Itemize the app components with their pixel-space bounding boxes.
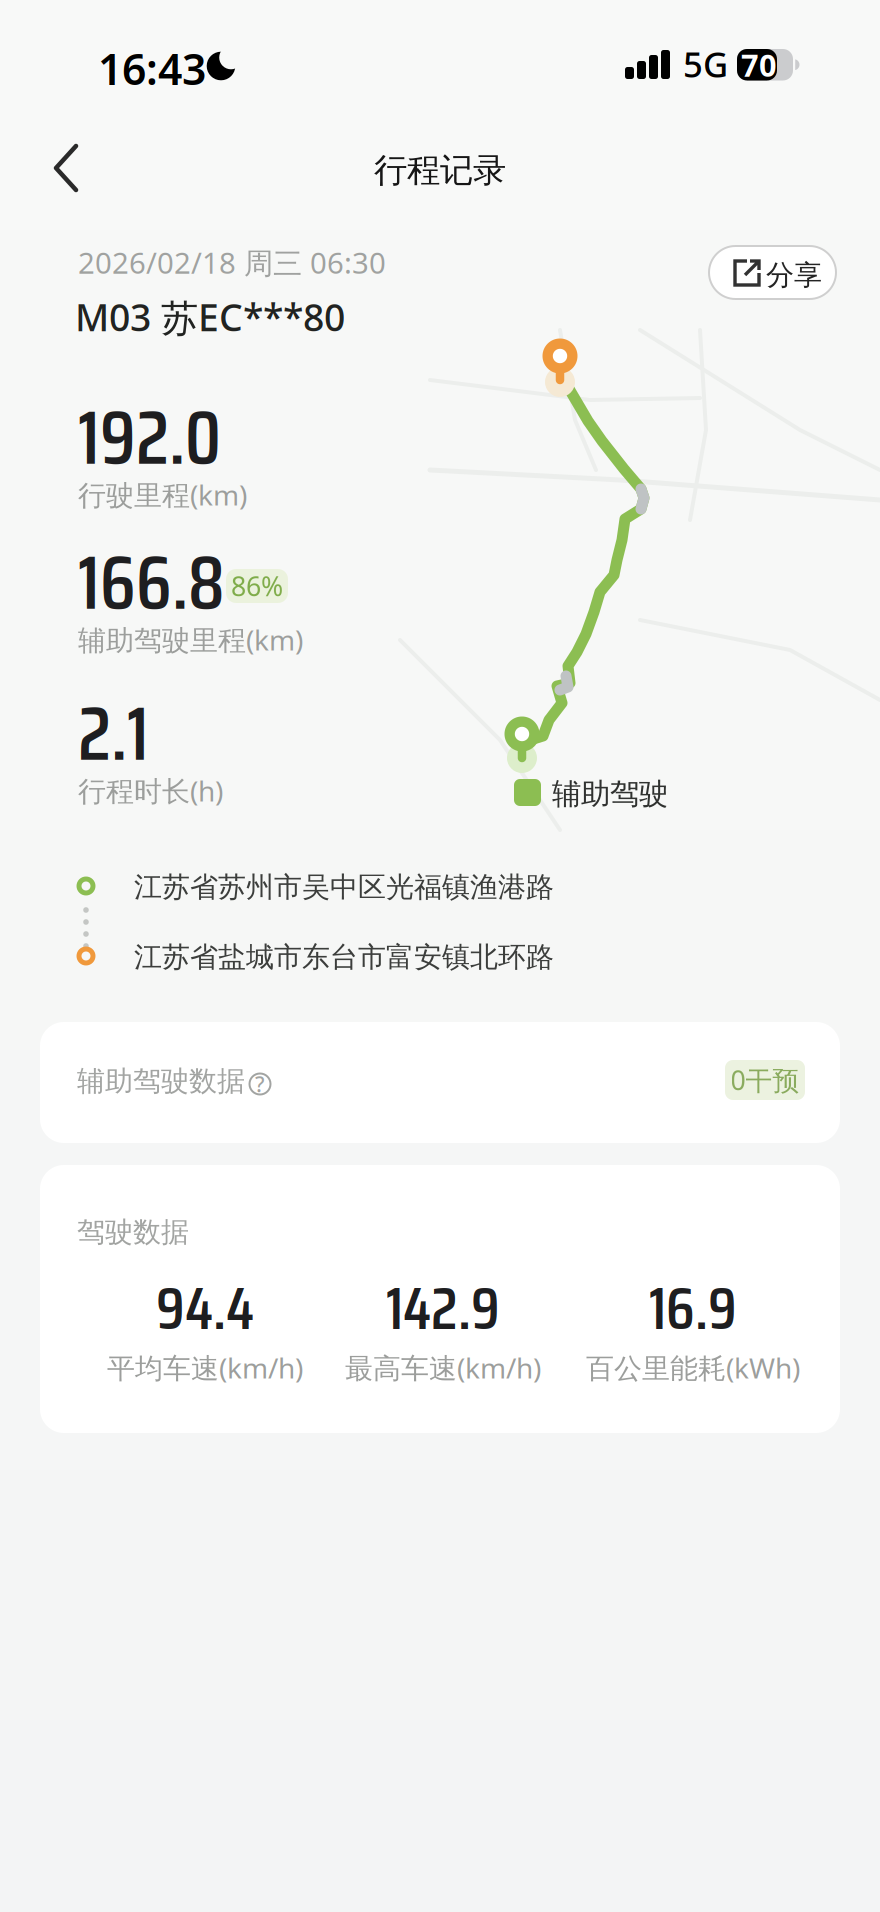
staticText: 86% (231, 568, 283, 604)
staticText: 分享 (766, 258, 822, 292)
staticText: 94.4 (156, 1261, 254, 1355)
staticText: 百公里能耗(kWh) (586, 1349, 800, 1386)
staticText: 辅助驾驶里程(km) (78, 621, 303, 658)
staticText: 142.9 (386, 1261, 500, 1355)
staticText: 166.8 (78, 524, 225, 641)
button[interactable]: 说明 (238, 1062, 282, 1106)
staticText: 行驶里程(km) (78, 476, 247, 513)
staticText: 0干预 (730, 1062, 799, 1098)
staticText: 最高车速(km/h) (345, 1349, 541, 1386)
staticText: 70 (741, 44, 777, 85)
staticText: 江苏省苏州市吴中区光福镇渔港路 (134, 870, 554, 904)
staticText: 江苏省盐城市东台市富安镇北环路 (134, 940, 554, 974)
staticText: 辅助驾驶 (552, 776, 668, 812)
staticText: 行程时长(h) (78, 772, 223, 809)
staticText: M03 苏EC***80 (75, 292, 345, 342)
staticText: 16:43 (98, 40, 206, 97)
staticText: 行程记录 (374, 150, 506, 191)
staticText: 2026/02/18 周三 06:30 (78, 243, 386, 282)
staticText: 平均车速(km/h) (107, 1349, 303, 1386)
staticText: 192.0 (78, 379, 221, 496)
staticText: 5G (683, 41, 728, 87)
staticText: 2.1 (78, 675, 149, 792)
staticText: 辅助驾驶数据 (77, 1064, 245, 1098)
button[interactable]: Back (40, 141, 116, 205)
staticText: 驾驶数据 (77, 1215, 189, 1249)
staticText: 16.9 (649, 1261, 737, 1355)
button[interactable]: 分享 (709, 246, 836, 299)
staticText: ? (255, 1070, 265, 1098)
